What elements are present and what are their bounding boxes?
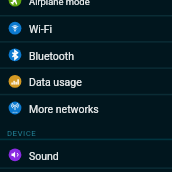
button[interactable]: Data usage bbox=[0, 68, 172, 95]
staticText: More networks bbox=[29, 103, 99, 115]
button[interactable]: Bluetooth bbox=[0, 42, 172, 69]
button[interactable]: Sound bbox=[0, 142, 172, 169]
staticText: Airplane mode bbox=[29, 0, 90, 7]
staticText: Sound bbox=[29, 150, 59, 162]
staticText: Wi-Fi bbox=[29, 23, 53, 35]
staticText: Data usage bbox=[29, 76, 82, 88]
button[interactable]: Airplane mode bbox=[0, 0, 172, 15]
button[interactable]: More networks bbox=[0, 95, 172, 122]
staticText: DEVICE bbox=[7, 129, 37, 138]
button[interactable]: DEVICE bbox=[0, 94, 172, 139]
button[interactable]: Wi-Fi bbox=[0, 15, 172, 42]
staticText: Bluetooth bbox=[29, 50, 74, 62]
